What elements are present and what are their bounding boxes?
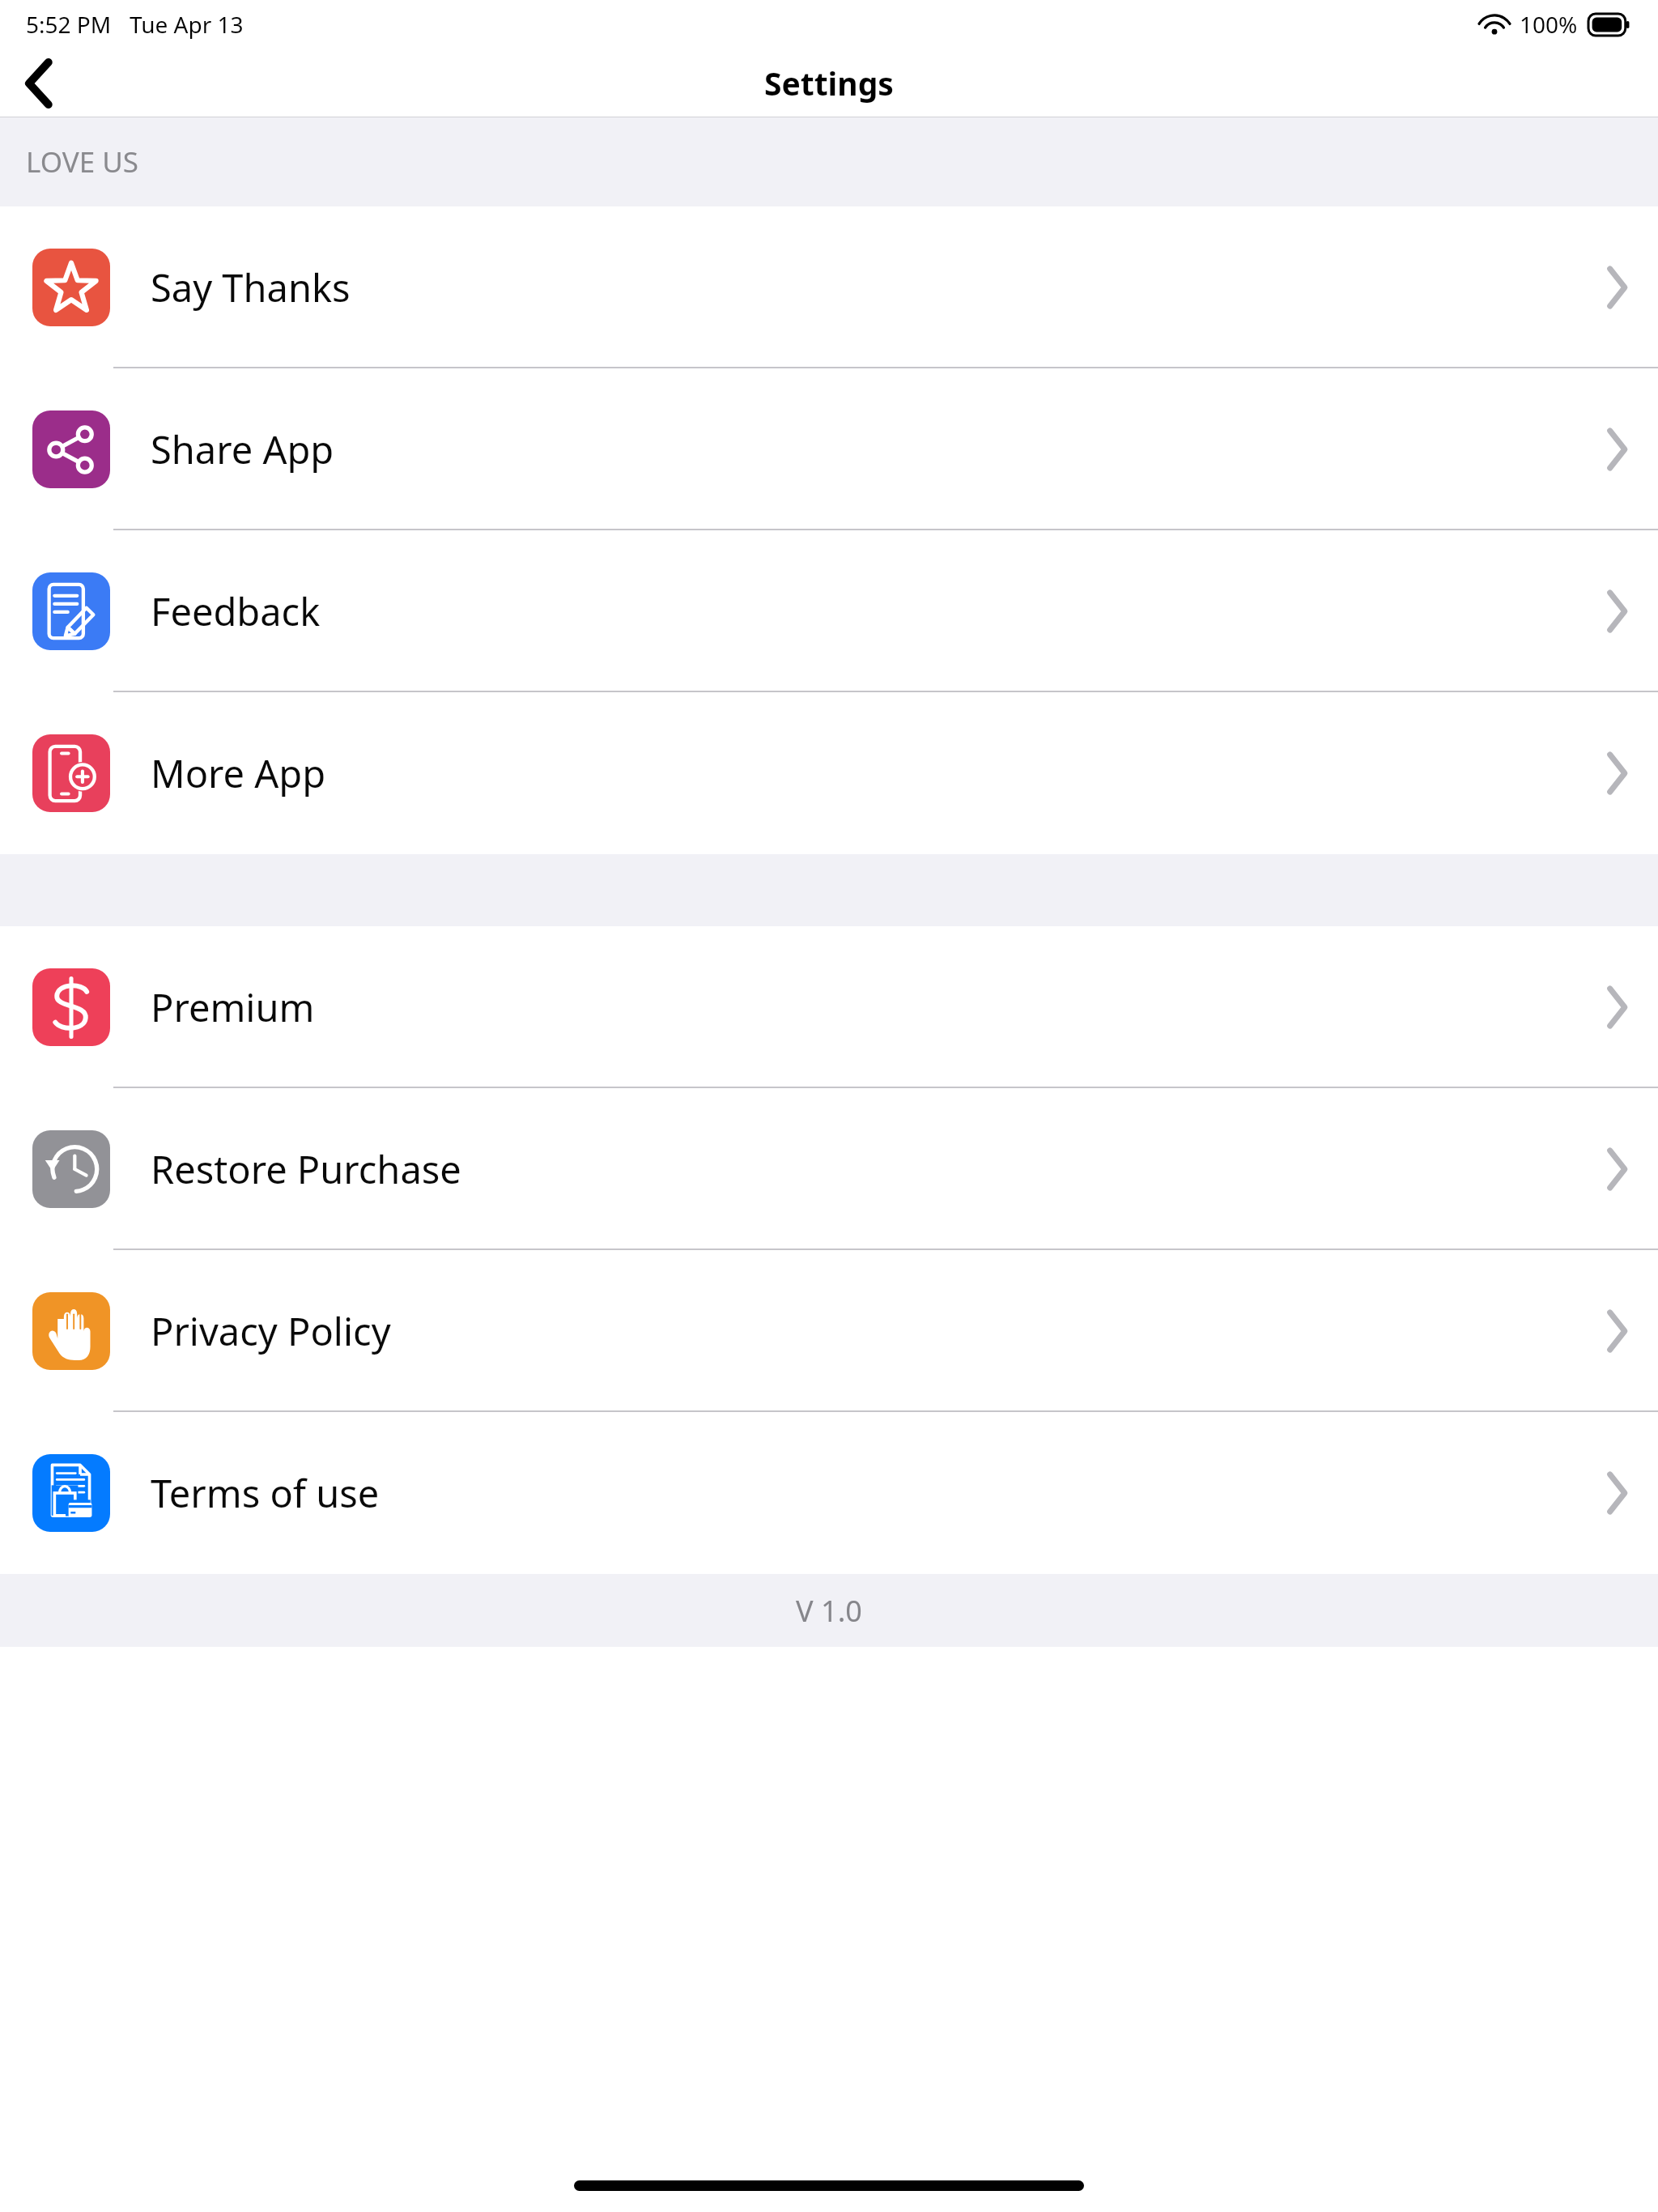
button[interactable]: Restore Purchase — [0, 1088, 1658, 1250]
staticText: LOVE US — [26, 143, 138, 181]
staticText: Restore Purchase — [151, 1143, 461, 1195]
button[interactable]: Say Thanks — [0, 206, 1658, 368]
staticText: Terms of use — [151, 1467, 380, 1519]
staticText: 100% — [1520, 9, 1578, 40]
staticText: Privacy Policy — [151, 1305, 391, 1357]
staticText: Share App — [151, 423, 334, 475]
staticText: Say Thanks — [151, 262, 351, 313]
button[interactable]: Share App — [0, 368, 1658, 530]
button[interactable]: Terms of use — [0, 1412, 1658, 1574]
staticText: Settings — [764, 62, 894, 104]
button[interactable]: More App — [0, 692, 1658, 854]
button[interactable]: Premium — [0, 926, 1658, 1088]
button[interactable]: Back — [0, 49, 78, 117]
staticText: V 1.0 — [796, 1591, 862, 1631]
staticText: Premium — [151, 981, 315, 1033]
staticText: Feedback — [151, 585, 321, 637]
button[interactable]: Privacy Policy — [0, 1250, 1658, 1412]
staticText: More App — [151, 747, 326, 799]
button[interactable]: Feedback — [0, 530, 1658, 692]
staticText: 5:52 PM — [26, 9, 112, 40]
staticText: Tue Apr 13 — [130, 9, 244, 40]
